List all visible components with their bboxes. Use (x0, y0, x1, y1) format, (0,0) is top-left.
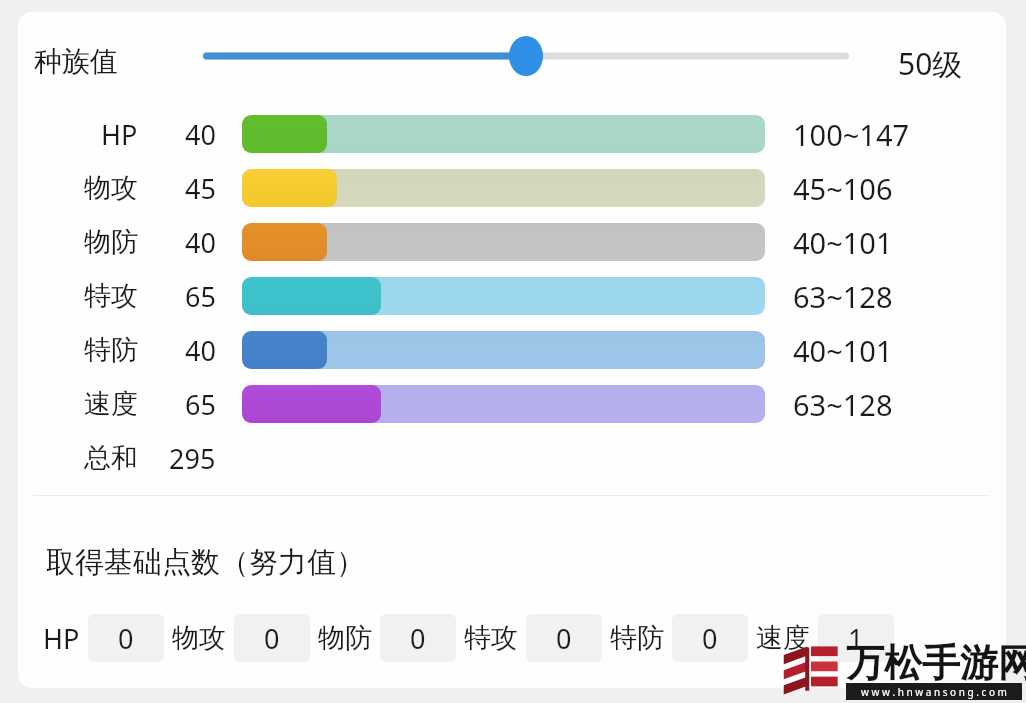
button[interactable]: HP (43, 614, 164, 662)
staticText: 0 (118, 620, 134, 657)
staticText: 50级 (898, 43, 963, 84)
staticText: 0 (702, 620, 718, 657)
staticText: 45~106 (793, 169, 893, 208)
staticText: 特攻 (84, 279, 138, 313)
button[interactable]: 物攻 (172, 614, 310, 662)
staticText: 总和 (84, 441, 138, 475)
button[interactable]: 特防 (18, 324, 1006, 376)
staticText: 万松手游网 (846, 639, 1026, 687)
button[interactable]: HP (18, 108, 1006, 160)
staticText: 取得基础点数（努力值） (46, 544, 365, 581)
staticText: HP (43, 620, 80, 657)
staticText: 40~101 (793, 331, 893, 370)
staticText: 种族值 (34, 44, 118, 79)
staticText: 特攻 (464, 621, 518, 655)
staticText: 295 (169, 440, 216, 477)
staticText: 0 (556, 620, 572, 657)
staticText: 1 (848, 620, 864, 657)
staticText: 0 (264, 620, 280, 657)
button[interactable]: 速度 (756, 614, 894, 662)
staticText: 63~128 (793, 385, 893, 424)
staticText: 40 (185, 224, 216, 261)
staticText: 速度 (756, 621, 810, 655)
staticText: 65 (185, 278, 216, 315)
staticText: 0 (410, 620, 426, 657)
staticText: 速度 (84, 387, 138, 421)
staticText: HP (101, 116, 138, 153)
staticText: w w w . h n w a n s o n g . c o m (861, 685, 1007, 699)
staticText: 特防 (610, 621, 664, 655)
button[interactable]: 物防 (318, 614, 456, 662)
staticText: 物攻 (172, 621, 226, 655)
staticText: 40 (185, 332, 216, 369)
button[interactable]: 物攻 (18, 162, 1006, 214)
staticText: 45 (185, 170, 216, 207)
staticText: 物攻 (84, 171, 138, 205)
button[interactable]: 速度 (18, 378, 1006, 430)
staticText: 100~147 (793, 115, 910, 154)
button[interactable]: 物防 (18, 216, 1006, 268)
staticText: 物防 (318, 621, 372, 655)
button[interactable]: 特攻 (18, 270, 1006, 322)
button[interactable]: Level slider (196, 34, 856, 78)
staticText: 40~101 (793, 223, 893, 262)
staticText: 特防 (84, 333, 138, 367)
button[interactable]: 特攻 (464, 614, 602, 662)
button[interactable]: 特防 (610, 614, 748, 662)
staticText: 物防 (84, 225, 138, 259)
staticText: 65 (185, 386, 216, 423)
staticText: 63~128 (793, 277, 893, 316)
staticText: 40 (185, 116, 216, 153)
